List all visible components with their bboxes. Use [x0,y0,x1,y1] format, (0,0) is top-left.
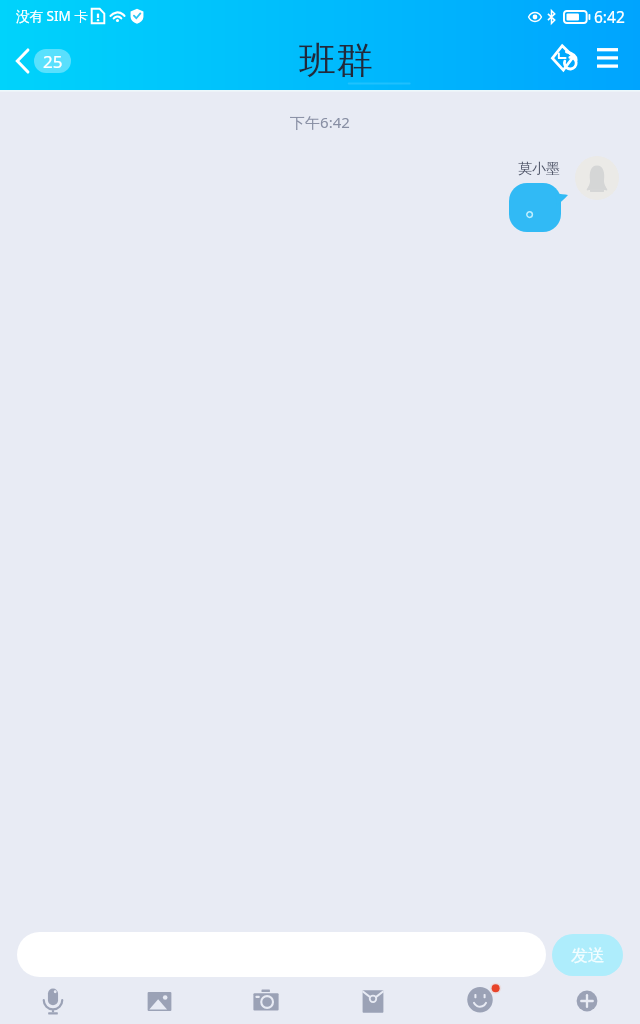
button[interactable]: Photos [139,981,179,1021]
staticText: 发送 [571,945,605,966]
staticText: 6:42 [594,6,625,27]
button[interactable]: Back [16,49,71,73]
staticText: 班群 [299,37,373,84]
button[interactable]: Avatar [575,156,619,200]
staticText: 没有 SIM 卡 [16,7,88,25]
staticText: 下午6:42 [0,112,640,132]
button[interactable]: Red packet [353,981,393,1021]
button[interactable]: Menu [586,37,628,79]
button[interactable]: Camera [246,981,286,1021]
other: Back [16,49,29,73]
staticText: 莫小墨 [518,160,560,178]
button[interactable]: Emoji [460,981,500,1021]
staticText: 25 [43,50,63,73]
button[interactable]: Voice message [33,981,73,1021]
button[interactable]: 发送 [552,934,623,976]
button[interactable]: Group message card [541,37,583,79]
button[interactable]: Message input [17,932,546,977]
button[interactable]: More options [567,981,607,1021]
